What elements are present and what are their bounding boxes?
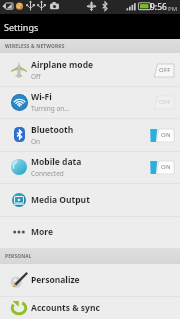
staticText: Personalize bbox=[31, 274, 80, 286]
staticText: ON bbox=[161, 163, 171, 171]
staticText: Connected bbox=[31, 169, 64, 178]
staticText: Bluetooth bbox=[31, 124, 74, 136]
staticText: OFF bbox=[159, 98, 171, 106]
staticText: Accounts & sync bbox=[31, 302, 100, 314]
staticText: WIRELESS & NETWORKS bbox=[5, 43, 65, 50]
button[interactable]: Airplane mode bbox=[0, 53, 180, 86]
staticText: Off bbox=[31, 72, 41, 81]
staticText: Settings bbox=[4, 21, 39, 33]
staticText: On bbox=[31, 137, 41, 146]
button[interactable]: Airplane mode switch bbox=[150, 60, 174, 80]
button[interactable]: Accounts & sync bbox=[0, 296, 180, 319]
button[interactable]: Wi-Fi bbox=[0, 86, 180, 118]
button[interactable]: Wi-Fi switch bbox=[150, 92, 174, 112]
button[interactable]: Settings bbox=[0, 14, 180, 39]
staticText: PM bbox=[168, 5, 178, 13]
staticText: Media Output bbox=[31, 194, 90, 206]
staticText: ON bbox=[161, 131, 171, 139]
staticText: 9:56 bbox=[150, 1, 167, 13]
staticText: Airplane mode bbox=[31, 59, 94, 71]
button[interactable]: Bluetooth bbox=[0, 118, 180, 151]
button[interactable]: Mobile data bbox=[0, 151, 180, 183]
staticText: More bbox=[31, 226, 54, 238]
button[interactable]: Mobile data switch bbox=[150, 157, 174, 177]
staticText: Mobile data bbox=[31, 156, 82, 168]
button[interactable]: Bluetooth switch bbox=[150, 125, 174, 145]
staticText: OFF bbox=[159, 66, 171, 74]
button[interactable]: Media Output bbox=[0, 183, 180, 216]
staticText: Turning on... bbox=[31, 104, 70, 113]
button[interactable]: More bbox=[0, 216, 180, 248]
staticText: Wi-Fi bbox=[31, 91, 52, 103]
button[interactable]: Personalize bbox=[0, 264, 180, 296]
staticText: PERSONAL bbox=[5, 253, 32, 260]
